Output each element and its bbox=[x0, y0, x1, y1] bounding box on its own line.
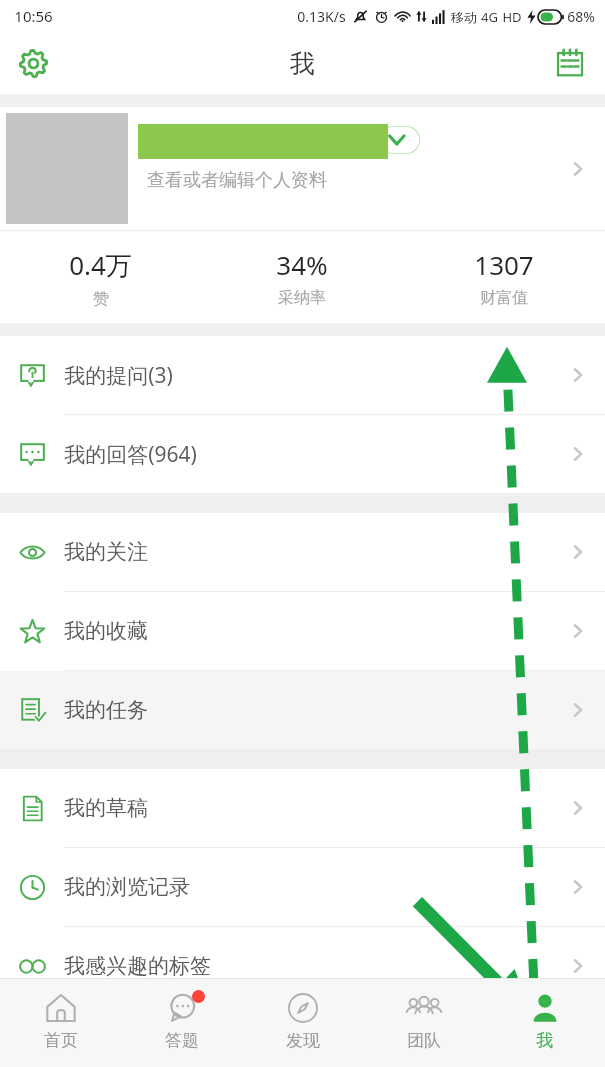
staticText: 我的关注 bbox=[64, 539, 148, 565]
button[interactable]: 我的回答(964) bbox=[0, 415, 605, 493]
staticText: 10:56 bbox=[14, 6, 53, 26]
staticText: 0.4万 bbox=[69, 247, 132, 283]
button[interactable]: 发现 bbox=[242, 979, 363, 1067]
button[interactable]: 首页 bbox=[0, 979, 121, 1067]
staticText: 我的回答(964) bbox=[64, 440, 197, 469]
staticText: 首页 bbox=[44, 1030, 78, 1051]
staticText: 发现 bbox=[286, 1030, 320, 1051]
staticText: HD bbox=[502, 8, 522, 26]
staticText: 移动 bbox=[451, 9, 477, 25]
staticText: 4G bbox=[481, 8, 498, 26]
button[interactable]: Settings bbox=[8, 38, 58, 88]
staticText: 我 bbox=[290, 48, 315, 79]
staticText: 我的收藏 bbox=[64, 618, 148, 644]
button[interactable]: 我的收藏 bbox=[0, 592, 605, 670]
button[interactable]: Calendar bbox=[545, 38, 595, 88]
staticText: 我的提问(3) bbox=[64, 361, 173, 390]
button[interactable]: 我的浏览记录 bbox=[0, 848, 605, 926]
button[interactable]: 查看或者编辑个人资料 bbox=[0, 107, 605, 230]
staticText: 查看或者编辑个人资料 bbox=[147, 169, 327, 192]
staticText: 0.13K/s bbox=[297, 7, 346, 26]
staticText: 34% bbox=[276, 247, 328, 282]
staticText: 我感兴趣的标签 bbox=[64, 953, 211, 979]
button[interactable]: 我的任务 bbox=[0, 671, 605, 749]
staticText: 财富值 bbox=[480, 288, 528, 308]
button[interactable]: 0.4万 bbox=[0, 231, 201, 323]
staticText: 赞 bbox=[93, 289, 109, 309]
staticText: 68% bbox=[567, 7, 595, 26]
button[interactable]: 34% bbox=[201, 231, 403, 323]
button[interactable]: 团队 bbox=[363, 979, 484, 1067]
staticText: 我的草稿 bbox=[64, 795, 148, 821]
button[interactable]: 我的草稿 bbox=[0, 769, 605, 847]
staticText: 答题 bbox=[165, 1030, 199, 1051]
staticText: 我的任务 bbox=[64, 697, 148, 723]
button[interactable]: 我的提问(3) bbox=[0, 336, 605, 414]
staticText: 采纳率 bbox=[278, 288, 326, 308]
staticText: 1307 bbox=[474, 247, 534, 282]
button[interactable]: 我 bbox=[484, 979, 605, 1067]
staticText: 我 bbox=[536, 1030, 553, 1051]
button[interactable]: 我的关注 bbox=[0, 513, 605, 591]
button[interactable]: 我感兴趣的标签 bbox=[0, 927, 605, 1005]
button[interactable]: 1307 bbox=[403, 231, 605, 323]
staticText: 我的浏览记录 bbox=[64, 874, 190, 900]
button[interactable]: 答题 bbox=[121, 979, 242, 1067]
staticText: 团队 bbox=[407, 1030, 441, 1051]
